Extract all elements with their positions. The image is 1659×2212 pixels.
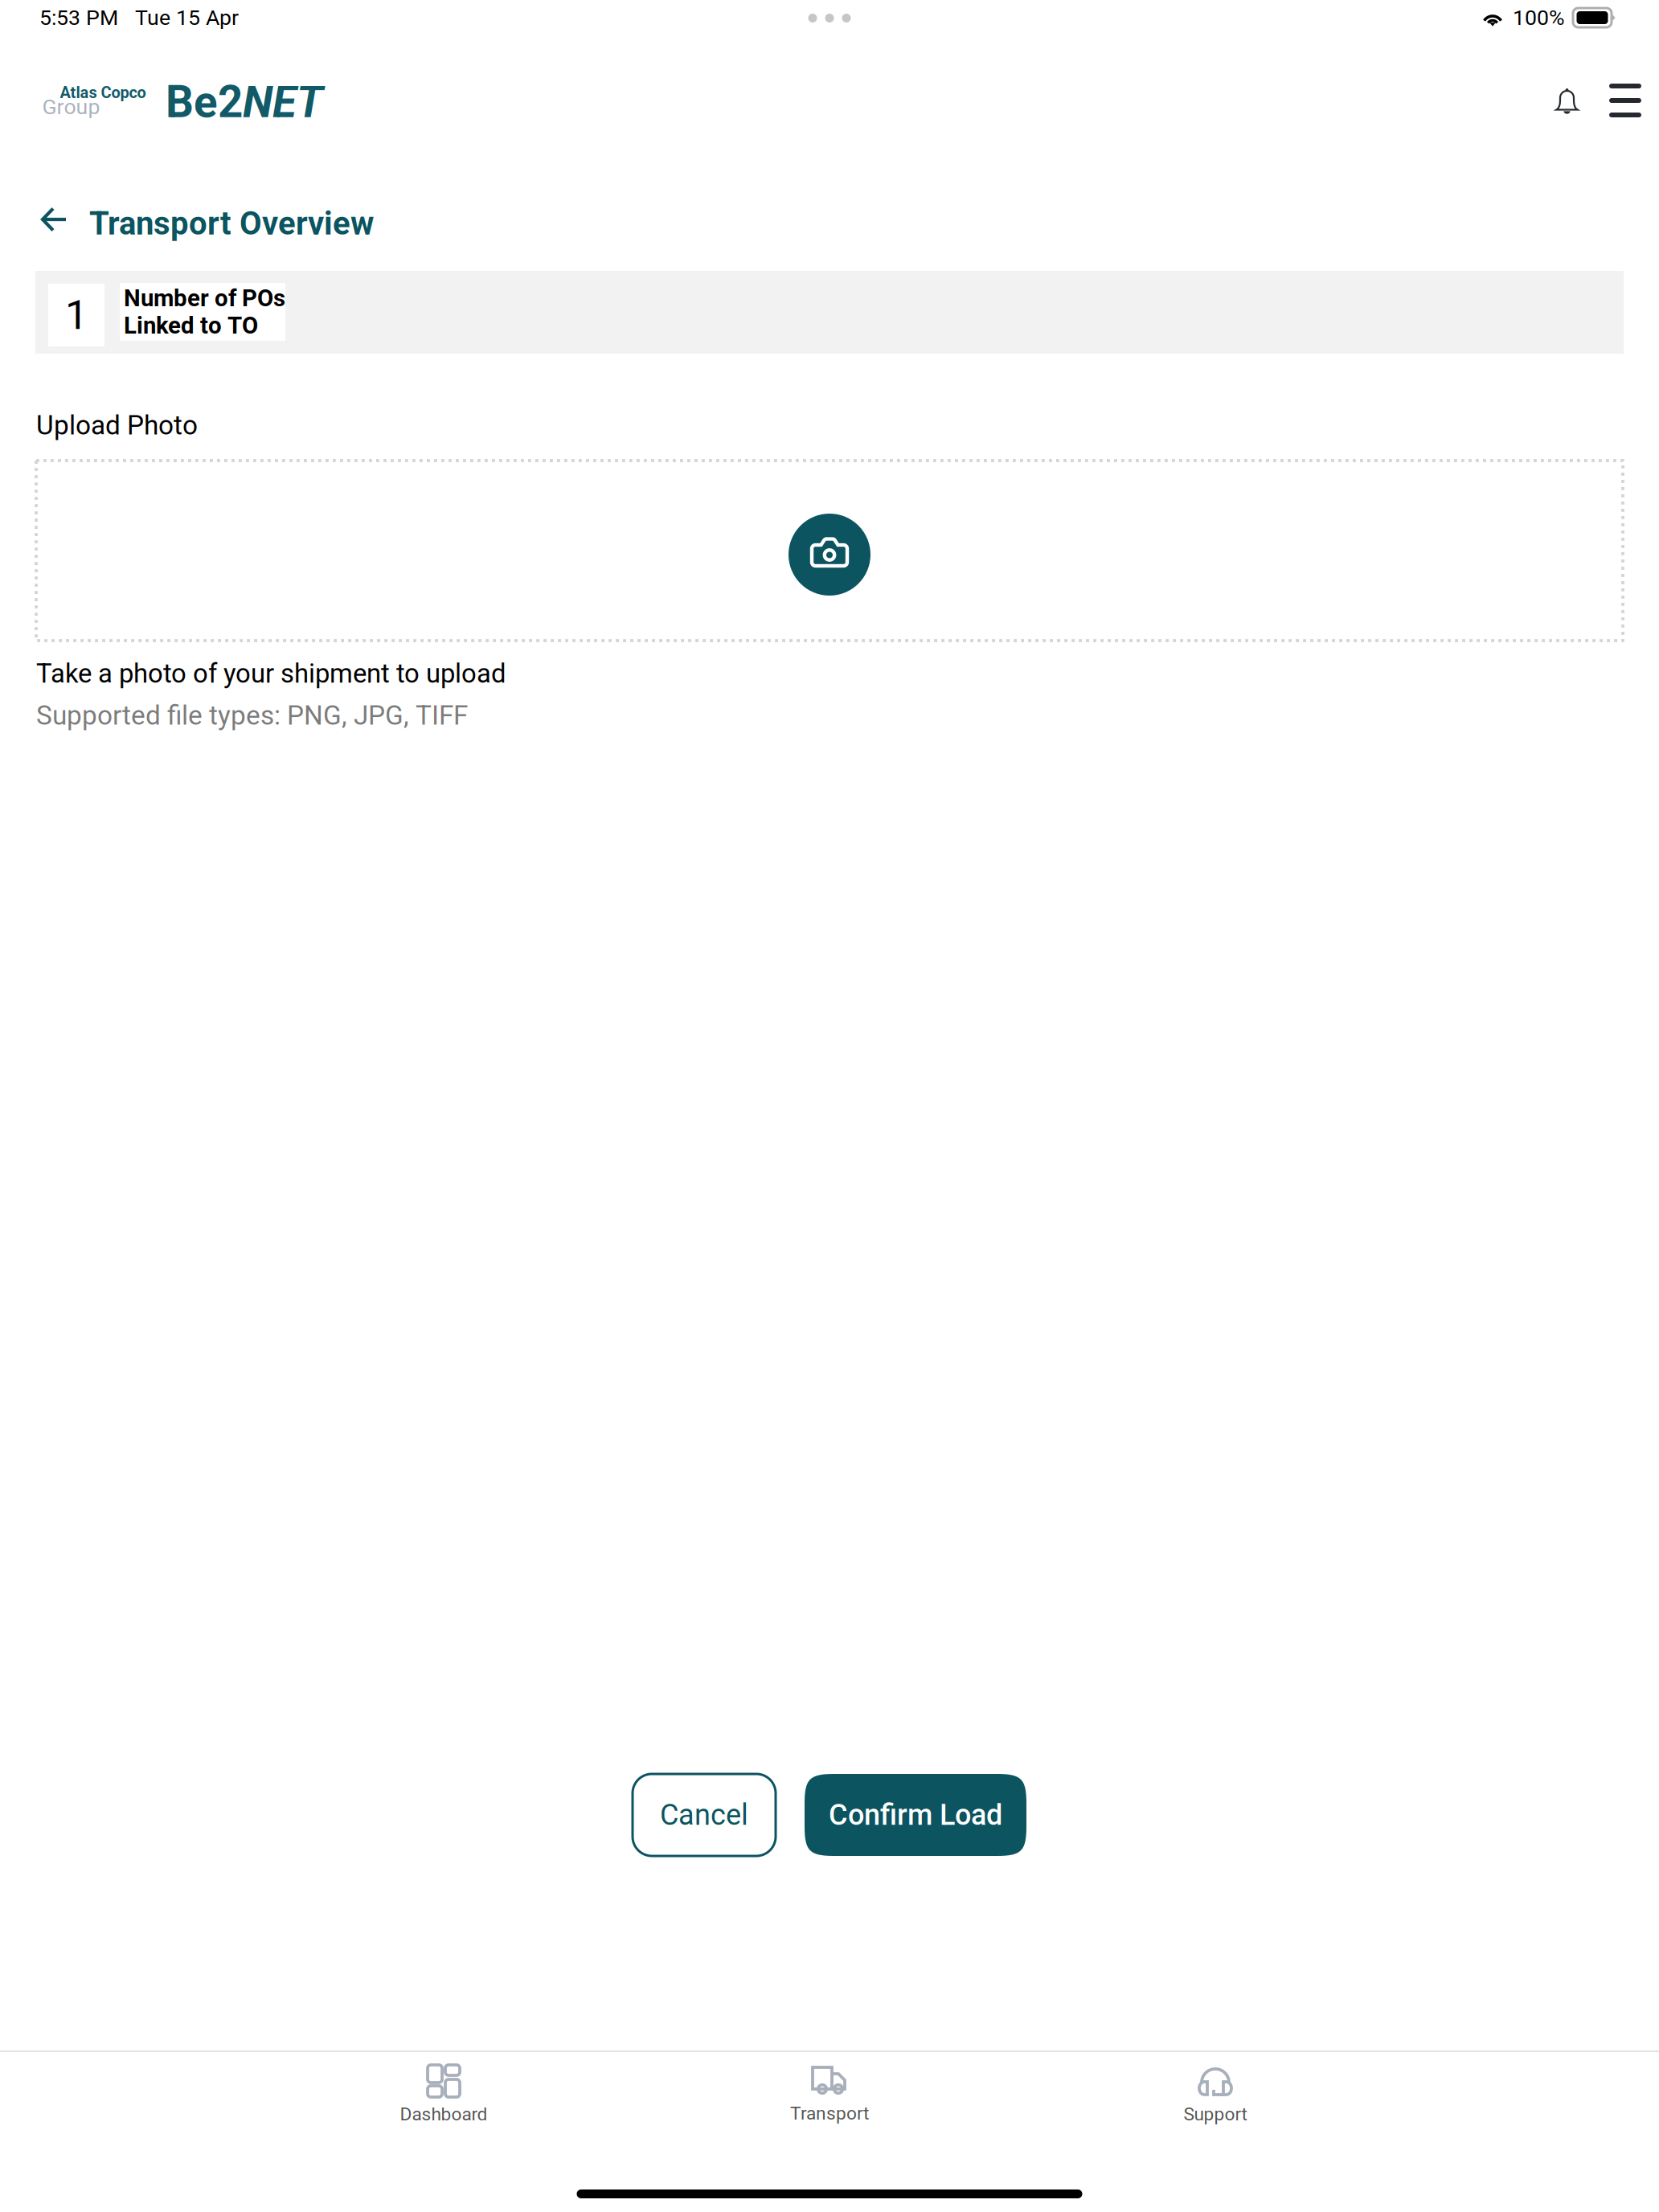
staticText: 100% — [1513, 5, 1565, 30]
staticText: Supported file types: PNG, JPG, TIFF — [36, 700, 468, 731]
staticText: Linked to TO — [124, 312, 258, 339]
button[interactable]: Support — [1022, 2052, 1408, 2138]
button[interactable]: Cancel — [633, 1774, 776, 1856]
staticText: Confirm Load — [829, 1798, 1002, 1832]
staticText: Dashboard — [400, 2103, 487, 2125]
staticText: Cancel — [660, 1798, 748, 1832]
button[interactable]: Notifications — [1539, 65, 1595, 123]
staticText: Group — [42, 94, 100, 120]
staticText: 5:53 PM — [39, 5, 118, 30]
staticText: Atlas Copco — [60, 83, 146, 102]
staticText: Upload Photo — [36, 410, 198, 441]
staticText: Support — [1184, 2103, 1247, 2125]
staticText: Transport — [790, 2103, 869, 2124]
staticText: 1 — [65, 291, 88, 339]
button[interactable]: Transport Overview — [0, 153, 1659, 271]
button[interactable]: Take a photo — [36, 461, 1623, 641]
staticText: Take a photo of your shipment to upload — [36, 658, 506, 689]
button[interactable]: Confirm Load — [805, 1774, 1026, 1856]
button[interactable]: Dashboard — [251, 2052, 637, 2138]
staticText: Transport Overview — [89, 205, 374, 242]
staticText: NET — [243, 76, 323, 128]
button[interactable]: Transport — [637, 2053, 1022, 2137]
staticText: Tue 15 Apr — [135, 5, 239, 30]
staticText: Be2 — [166, 76, 243, 128]
staticText: Number of POs — [124, 284, 285, 312]
button[interactable]: Menu — [1596, 65, 1654, 123]
